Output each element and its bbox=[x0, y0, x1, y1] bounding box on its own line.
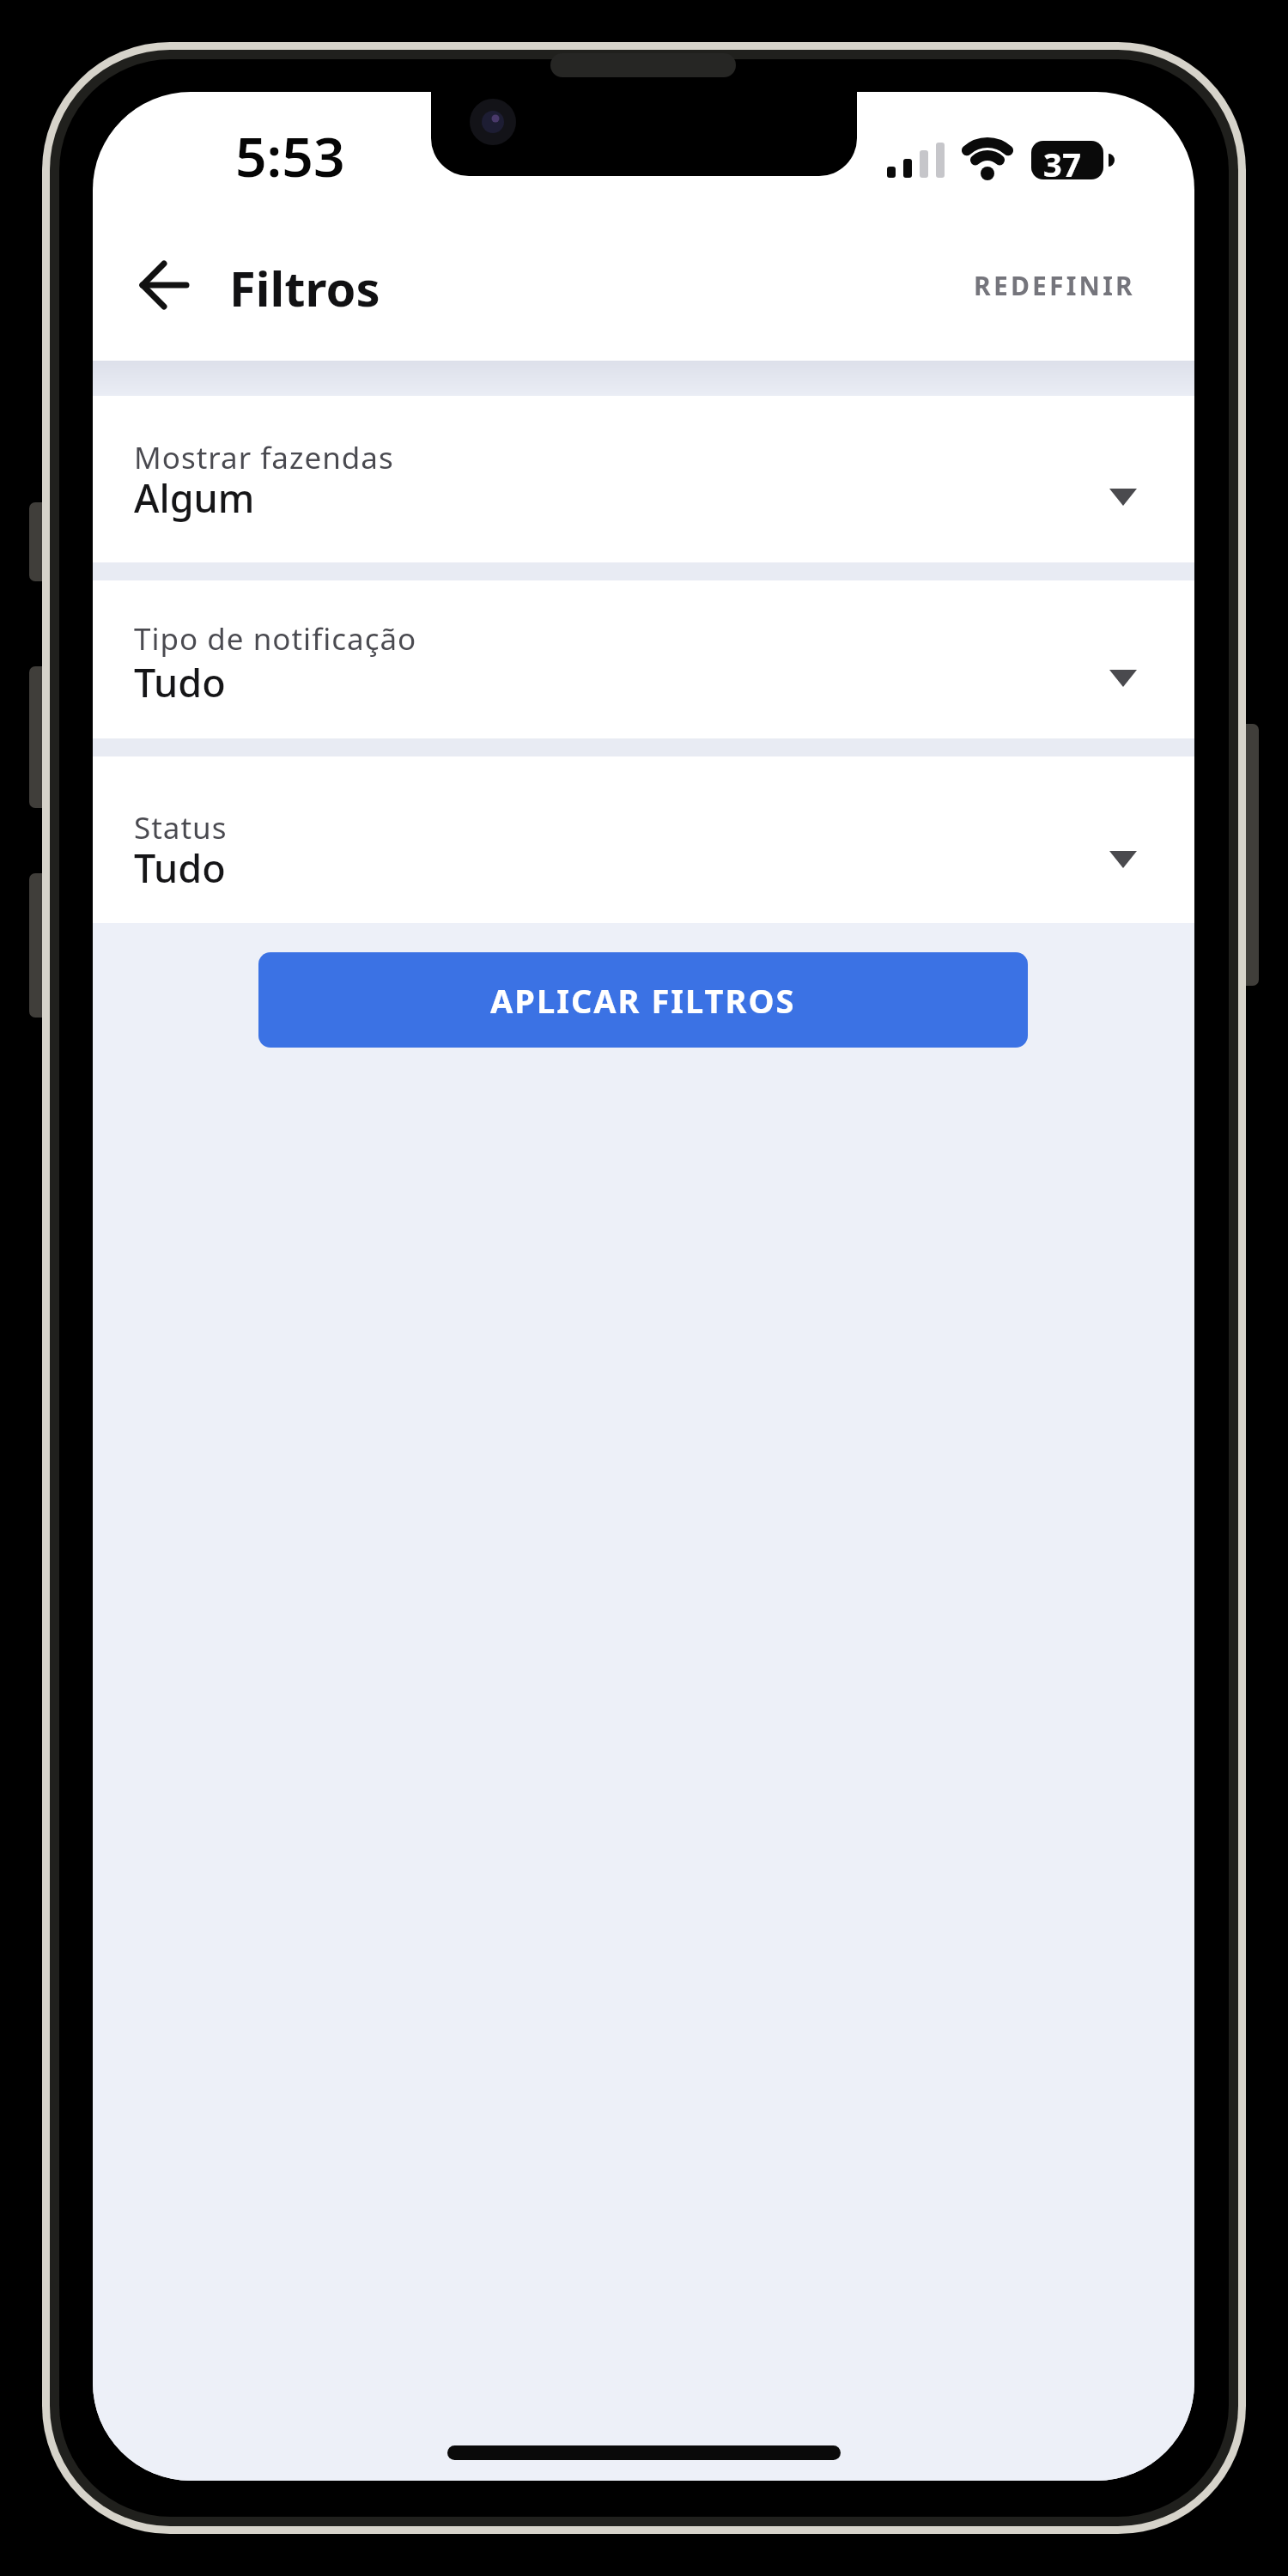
button[interactable]: Status bbox=[93, 756, 1194, 923]
staticText: APLICAR FILTROS bbox=[490, 978, 796, 1023]
button[interactable]: Mostrar fazendas bbox=[93, 396, 1194, 562]
staticText: 37 bbox=[1043, 142, 1082, 186]
staticText: Tudo bbox=[134, 656, 226, 708]
staticText: REDEFINIR bbox=[974, 268, 1135, 303]
button[interactable]: REDEFINIR bbox=[974, 259, 1135, 295]
staticText: 5:53 bbox=[235, 118, 345, 193]
staticText: Status bbox=[134, 807, 228, 848]
button[interactable]: APLICAR FILTROS bbox=[258, 952, 1028, 1048]
button[interactable]: Tipo de notificação bbox=[93, 580, 1194, 738]
staticText: Tudo bbox=[134, 841, 226, 894]
staticText: Filtros bbox=[229, 255, 380, 320]
staticText: Algum bbox=[134, 471, 255, 524]
staticText: Tipo de notificação bbox=[134, 618, 417, 659]
staticText: Mostrar fazendas bbox=[134, 437, 394, 478]
button[interactable] bbox=[127, 251, 204, 319]
